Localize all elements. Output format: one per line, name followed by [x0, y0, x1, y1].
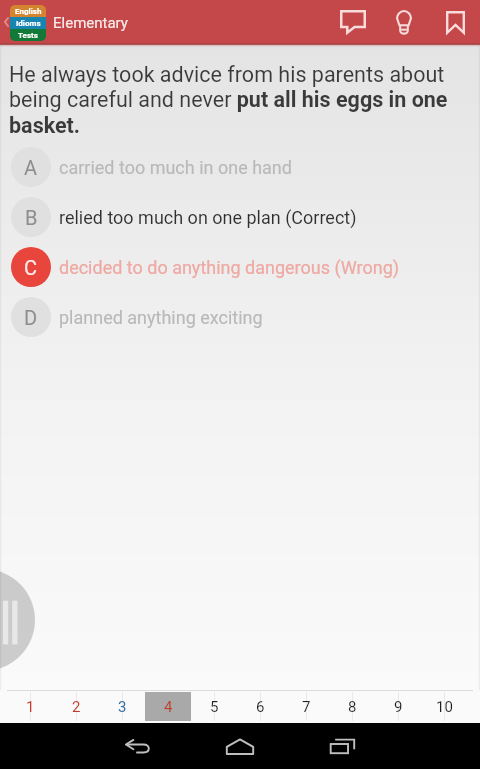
button[interactable]: Bookmark [432, 0, 478, 44]
staticText: 4 [164, 698, 173, 716]
staticText: planned anything exciting [59, 307, 263, 328]
staticText: 8 [348, 698, 357, 716]
staticText: 7 [302, 698, 311, 716]
staticText: 1 [26, 698, 35, 716]
button[interactable]: D [0, 292, 480, 342]
staticText: carried too much in one hand [59, 157, 292, 178]
button[interactable]: Navigate up [0, 0, 12, 44]
button[interactable]: A [0, 142, 480, 192]
button[interactable]: 5 [191, 692, 237, 721]
staticText: English [15, 7, 42, 16]
staticText: 5 [210, 698, 219, 716]
staticText: B [25, 206, 38, 229]
staticText: C [24, 256, 38, 279]
staticText: He always took advice from his parents a… [9, 62, 469, 138]
button[interactable]: Home [214, 723, 266, 769]
button[interactable]: C [0, 242, 480, 292]
button[interactable]: 10 [421, 692, 467, 721]
button[interactable]: Recents [317, 723, 369, 769]
button[interactable]: 3 [99, 692, 145, 721]
button[interactable]: 9 [375, 692, 421, 721]
button[interactable]: 2 [53, 692, 99, 721]
staticText: 10 [436, 698, 453, 716]
button[interactable]: Pause [0, 569, 35, 671]
button[interactable]: 7 [283, 692, 329, 721]
staticText: 6 [256, 698, 265, 716]
button[interactable]: 4 [145, 692, 191, 721]
button[interactable]: Hint [381, 0, 427, 44]
button[interactable]: B [0, 192, 480, 242]
staticText: Elementary [53, 14, 128, 32]
button[interactable]: Comments [330, 0, 375, 44]
staticText: decided to do anything dangerous (Wrong) [59, 257, 400, 278]
staticText: 3 [118, 698, 127, 716]
staticText: 9 [394, 698, 403, 716]
button[interactable]: Back [111, 723, 163, 769]
button[interactable]: 8 [329, 692, 375, 721]
staticText: A [24, 156, 38, 179]
staticText: D [24, 306, 38, 329]
button[interactable]: 6 [237, 692, 283, 721]
button[interactable]: English Idioms Tests [10, 5, 46, 41]
staticText: Tests [18, 31, 38, 40]
staticText: relied too much on one plan (Correct) [59, 207, 357, 228]
button[interactable]: 1 [7, 692, 53, 721]
staticText: 2 [72, 698, 81, 716]
staticText: Idioms [16, 19, 41, 28]
